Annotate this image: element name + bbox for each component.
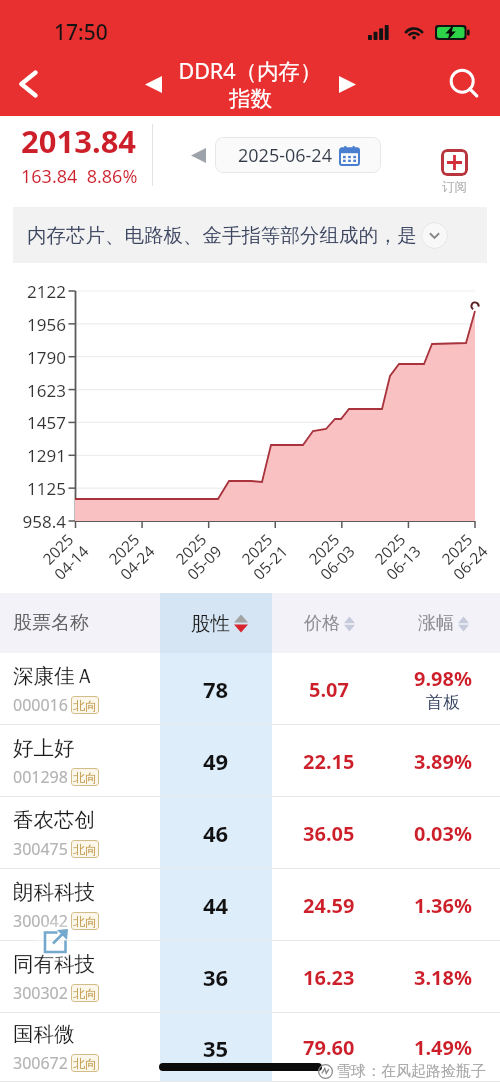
staticText: 2025 06-13 xyxy=(367,527,423,583)
staticText: 2025 06-24 xyxy=(434,527,490,583)
staticText: 78 xyxy=(203,674,229,704)
staticText: 朗科科技 xyxy=(13,879,95,905)
staticText: 3.89% xyxy=(414,748,472,775)
staticText: 股票名称 xyxy=(13,611,89,635)
staticText: 2025 05-21 xyxy=(234,527,290,583)
staticText: 9.98% xyxy=(414,665,472,692)
button[interactable]: 订阅 xyxy=(441,149,468,195)
staticText: 36.05 xyxy=(303,820,355,847)
button[interactable]: Previous index xyxy=(128,59,178,109)
staticText: 17:50 xyxy=(54,18,108,47)
staticText: 北向 xyxy=(73,986,97,1001)
button[interactable]: 内存芯片、电路板、金手指等部分组成的，是 xyxy=(13,207,487,263)
staticText: 2025 04-14 xyxy=(35,527,91,583)
staticText: 300042 xyxy=(13,910,68,932)
button[interactable]: 股票名称 xyxy=(0,593,160,653)
staticText: 价格 xyxy=(304,612,340,635)
staticText: 1790 xyxy=(27,346,66,369)
staticText: 1956 xyxy=(27,313,66,336)
staticText: 深康佳Ａ xyxy=(13,663,95,689)
staticText: 3.18% xyxy=(414,964,472,991)
staticText: 300672 xyxy=(13,1052,68,1074)
staticText: 5.07 xyxy=(309,676,349,703)
staticText: 北向 xyxy=(73,914,97,929)
button[interactable]: 2025-06-24 xyxy=(215,137,381,173)
button[interactable]: 股性 xyxy=(160,593,272,653)
staticText: 44 xyxy=(203,890,229,920)
staticText: 79.60 xyxy=(303,1034,355,1061)
staticText: 指数 xyxy=(229,85,272,112)
button[interactable]: Back xyxy=(0,56,56,112)
staticText: 22.15 xyxy=(303,748,355,775)
staticText: 1125 xyxy=(27,477,66,500)
staticText: 首板 xyxy=(426,692,460,713)
staticText: 1457 xyxy=(27,411,66,434)
staticText: 北向 xyxy=(73,770,97,785)
staticText: 0.03% xyxy=(414,820,472,847)
button[interactable]: 同有科技 xyxy=(0,941,500,1013)
staticText: 46 xyxy=(203,818,229,848)
staticText: 2025-06-24 xyxy=(238,143,332,168)
staticText: 内存芯片、电路板、金手指等部分组成的，是 xyxy=(27,223,417,248)
button[interactable]: 香农芯创 xyxy=(0,797,500,869)
button[interactable]: Previous date xyxy=(181,138,215,172)
button[interactable]: Share xyxy=(35,921,76,962)
staticText: 958.4 xyxy=(22,510,66,533)
staticText: 1291 xyxy=(27,444,66,467)
button[interactable]: Next index xyxy=(322,59,372,109)
staticText: 国科微 xyxy=(13,1021,75,1047)
staticText: 北向 xyxy=(73,842,97,857)
staticText: 300302 xyxy=(13,982,68,1004)
staticText: 2025 04-24 xyxy=(101,527,157,583)
staticText: 北向 xyxy=(73,1056,97,1071)
staticText: 001298 xyxy=(13,766,68,788)
staticText: 订阅 xyxy=(442,179,467,195)
staticText: 000016 xyxy=(13,694,68,716)
staticText: 1.49% xyxy=(414,1034,472,1061)
staticText: 好上好 xyxy=(13,735,75,761)
staticText: 股性 xyxy=(191,611,230,636)
staticText: 24.59 xyxy=(303,892,355,919)
staticText: 1.36% xyxy=(414,892,472,919)
staticText: 香农芯创 xyxy=(13,807,95,833)
staticText: 36 xyxy=(203,962,229,992)
staticText: 2025 05-09 xyxy=(168,527,224,583)
staticText: 300475 xyxy=(13,838,68,860)
staticText: 涨幅 xyxy=(418,612,454,635)
staticText: 35 xyxy=(203,1033,229,1063)
staticText: DDR4（内存） xyxy=(178,56,322,85)
staticText: 163.84 8.86% xyxy=(21,164,138,189)
staticText: 16.23 xyxy=(303,964,355,991)
button[interactable]: 深康佳Ａ xyxy=(0,653,500,725)
button[interactable]: 价格 xyxy=(272,593,386,653)
staticText: 2122 xyxy=(27,280,66,303)
button[interactable]: 涨幅 xyxy=(386,593,500,653)
staticText: 1623 xyxy=(27,379,66,402)
button[interactable]: 朗科科技 xyxy=(0,869,500,941)
staticText: 北向 xyxy=(73,698,97,713)
staticText: 同有科技 xyxy=(13,951,95,977)
button[interactable]: 国科微 xyxy=(0,1013,500,1082)
staticText: 2025 06-03 xyxy=(301,527,357,583)
staticText: 雪球：在风起路捡瓶子 xyxy=(336,1062,486,1081)
button[interactable]: Search xyxy=(436,55,494,113)
staticText: 2013.84 xyxy=(21,120,137,162)
button[interactable]: 好上好 xyxy=(0,725,500,797)
staticText: 49 xyxy=(203,746,229,776)
